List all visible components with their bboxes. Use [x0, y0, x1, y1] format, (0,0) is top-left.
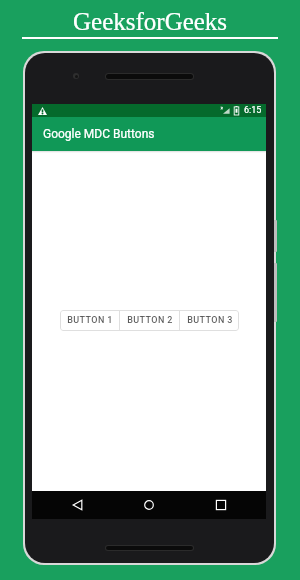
button[interactable]: BUTTON 1	[60, 310, 119, 331]
staticText: Google MDC Buttons	[43, 127, 155, 141]
staticText: GeeksforGeeks	[73, 8, 228, 36]
staticText: 6:15	[244, 105, 262, 116]
button[interactable]: Back	[68, 496, 86, 514]
staticText: BUTTON 3	[187, 315, 233, 326]
button[interactable]: Recents	[212, 496, 230, 514]
button[interactable]: BUTTON 2	[120, 310, 179, 331]
staticText: BUTTON 2	[127, 315, 173, 326]
staticText: BUTTON 1	[67, 315, 113, 326]
button[interactable]: BUTTON 3	[180, 310, 239, 331]
button[interactable]: Home	[140, 496, 158, 514]
